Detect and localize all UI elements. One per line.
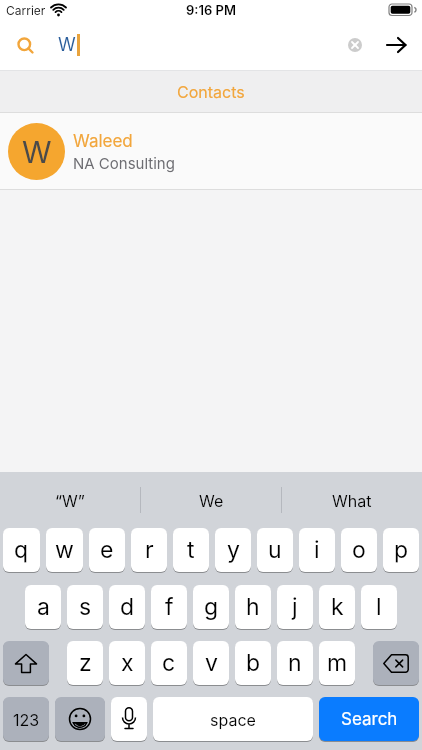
staticText: W (22, 134, 52, 170)
button[interactable]: What (282, 472, 422, 528)
staticText: f (165, 593, 174, 621)
staticText: s (79, 593, 92, 621)
button[interactable]: b (235, 641, 271, 685)
staticText: x (121, 649, 134, 677)
staticText: W (58, 34, 76, 56)
staticText: 9:16 PM (186, 2, 236, 18)
button[interactable]: l (361, 585, 397, 629)
button[interactable]: e (89, 528, 125, 572)
button[interactable]: r (131, 528, 167, 572)
button[interactable]: We (141, 472, 281, 528)
staticText: i (314, 536, 320, 564)
button[interactable]: d (109, 585, 145, 629)
staticText: d (120, 593, 135, 621)
button[interactable]: space (153, 697, 313, 741)
button[interactable]: q (3, 528, 40, 572)
button[interactable]: p (383, 528, 419, 572)
staticText: Waleed (73, 131, 133, 152)
button[interactable]: “W” (0, 472, 140, 528)
staticText: t (187, 536, 195, 564)
button[interactable]: W (0, 113, 422, 189)
button[interactable]: m (319, 641, 355, 685)
button[interactable]: n (277, 641, 313, 685)
staticText: w (55, 536, 74, 564)
button[interactable]: y (215, 528, 251, 572)
staticText: Search (341, 709, 398, 730)
staticText: NA Consulting (73, 154, 175, 172)
button[interactable]: k (319, 585, 355, 629)
button[interactable]: f (151, 585, 187, 629)
staticText: y (227, 536, 240, 564)
staticText: e (100, 536, 114, 564)
button[interactable]: x (109, 641, 145, 685)
button[interactable]: g (193, 585, 229, 629)
button[interactable]: i (299, 528, 335, 572)
staticText: q (14, 536, 29, 564)
staticText: c (162, 649, 176, 677)
button[interactable] (384, 33, 408, 57)
staticText: v (205, 649, 218, 677)
button[interactable] (111, 697, 147, 741)
button[interactable] (373, 641, 419, 685)
button[interactable]: 123 (3, 697, 49, 741)
button[interactable]: Search (319, 697, 419, 741)
staticText: u (268, 536, 282, 564)
button[interactable]: u (257, 528, 293, 572)
staticText: Contacts (177, 82, 245, 101)
button[interactable]: a (25, 585, 61, 629)
button[interactable] (348, 38, 362, 52)
button[interactable]: W (2, 20, 420, 70)
staticText: p (394, 536, 409, 564)
button[interactable]: c (151, 641, 187, 685)
staticText: 123 (13, 710, 40, 729)
button[interactable]: z (67, 641, 103, 685)
staticText: a (37, 593, 50, 621)
button[interactable]: h (235, 585, 271, 629)
button[interactable]: o (341, 528, 377, 572)
staticText: z (79, 649, 92, 677)
staticText: g (204, 593, 219, 621)
button[interactable]: v (193, 641, 229, 685)
button[interactable]: j (277, 585, 313, 629)
staticText: j (292, 593, 298, 621)
staticText: h (246, 593, 260, 621)
staticText: k (331, 593, 344, 621)
staticText: What (332, 491, 372, 510)
button[interactable]: s (67, 585, 103, 629)
staticText: n (288, 649, 302, 677)
button[interactable]: t (173, 528, 209, 572)
staticText: We (199, 491, 224, 510)
button[interactable] (3, 641, 49, 685)
staticText: o (352, 536, 366, 564)
staticText: space (210, 710, 256, 729)
staticText: Carrier (6, 3, 46, 18)
staticText: l (376, 593, 382, 621)
staticText: b (246, 649, 261, 677)
staticText: r (145, 536, 154, 564)
button[interactable]: w (46, 528, 83, 572)
staticText: m (327, 649, 348, 677)
button[interactable] (55, 697, 105, 741)
staticText: “W” (55, 491, 85, 510)
